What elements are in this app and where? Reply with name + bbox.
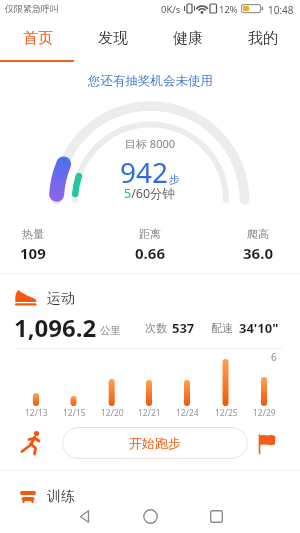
- staticText: 爬高: [247, 227, 269, 241]
- button[interactable]: 开始跑步: [62, 427, 248, 459]
- staticText: 12/29: [253, 407, 276, 419]
- staticText: 配速: [211, 321, 233, 335]
- staticText: 1,096.2: [14, 311, 97, 344]
- staticText: 训练: [47, 488, 75, 506]
- staticText: 36.0: [243, 243, 273, 263]
- staticText: 0.66: [135, 243, 165, 263]
- staticText: 5/60分钟: [124, 185, 176, 202]
- staticText: 6: [271, 350, 277, 364]
- staticText: 12/25: [215, 407, 238, 419]
- button[interactable]: 发现: [75, 17, 150, 60]
- button[interactable]: [117, 503, 183, 529]
- staticText: 12%: [219, 3, 238, 16]
- button[interactable]: 首页: [0, 17, 75, 60]
- button[interactable]: 我的: [225, 17, 300, 60]
- staticText: 12/13: [25, 407, 48, 419]
- button[interactable]: 健康: [150, 17, 225, 60]
- staticText: 您还有抽奖机会未使用: [88, 73, 213, 89]
- staticText: 34'10": [239, 319, 279, 337]
- staticText: 次数: [145, 321, 167, 335]
- staticText: 10:48: [268, 3, 294, 17]
- staticText: 发现: [98, 29, 128, 48]
- staticText: 目标 8000: [125, 136, 176, 151]
- staticText: 开始跑步: [129, 435, 181, 451]
- staticText: 109: [20, 243, 46, 263]
- staticText: 仅限紧急呼叫: [5, 3, 59, 14]
- staticText: 健康: [173, 29, 203, 48]
- button[interactable]: [183, 503, 249, 529]
- staticText: 热量: [22, 227, 44, 241]
- staticText: 我的: [248, 29, 278, 48]
- staticText: 12/15: [63, 407, 86, 419]
- staticText: 12/20: [101, 407, 124, 419]
- staticText: 运动: [47, 290, 75, 308]
- staticText: 首页: [23, 29, 53, 48]
- staticText: 公里: [100, 324, 121, 337]
- button[interactable]: [256, 432, 280, 456]
- staticText: 0K/s: [161, 3, 181, 16]
- staticText: 12/24: [176, 407, 199, 419]
- button[interactable]: [21, 429, 45, 459]
- staticText: 距离: [139, 227, 161, 241]
- staticText: 12/21: [138, 407, 161, 419]
- staticText: 942: [120, 153, 169, 191]
- staticText: 步: [169, 172, 180, 186]
- staticText: 537: [172, 319, 195, 337]
- button[interactable]: [51, 503, 117, 529]
- button[interactable]: 您还有抽奖机会未使用: [0, 62, 300, 100]
